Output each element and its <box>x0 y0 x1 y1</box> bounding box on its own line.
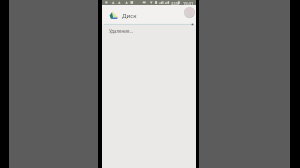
staticText: 33% <box>171 1 180 6</box>
staticText: Удаление... <box>109 28 133 34</box>
staticText: 19:31 <box>183 1 194 6</box>
staticText: Диск <box>122 11 137 19</box>
button[interactable]: Account <box>184 7 195 18</box>
button[interactable]: Диск <box>108 8 150 23</box>
